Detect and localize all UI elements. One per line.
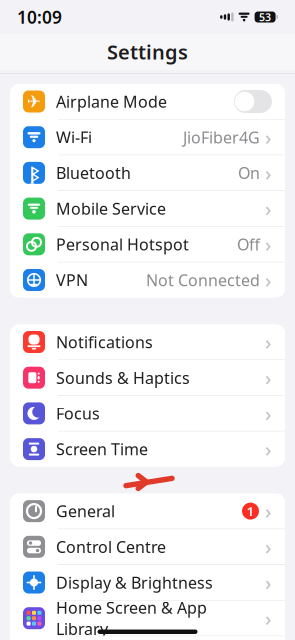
button[interactable]: ◗: [10, 120, 285, 155]
staticText: On: [238, 162, 260, 183]
staticText: Settings: [107, 38, 188, 65]
button[interactable]: Personal Hotspot: [10, 227, 285, 262]
staticText: ›: [265, 231, 272, 258]
button[interactable]: Control Centre: [10, 529, 285, 564]
staticText: ›: [265, 195, 272, 222]
staticText: ✈: [26, 92, 41, 111]
button[interactable]: ᛒ: [10, 155, 285, 190]
button[interactable]: Screen Time: [10, 432, 285, 467]
button[interactable]: Notifications: [10, 324, 285, 359]
staticText: VPN: [56, 269, 88, 291]
button[interactable]: VPN: [10, 262, 285, 297]
staticText: ›: [265, 267, 272, 293]
staticText: Off: [237, 234, 260, 255]
staticText: Home Screen & App Library: [56, 597, 207, 639]
staticText: ›: [265, 533, 272, 560]
button[interactable]: Focus: [10, 396, 285, 431]
staticText: ›: [265, 400, 272, 427]
button[interactable]: Mobile Service: [10, 191, 285, 226]
staticText: 53: [259, 10, 271, 24]
staticText: Not Connected: [146, 269, 260, 291]
staticText: ›: [265, 364, 272, 391]
staticText: 1: [246, 502, 254, 520]
staticText: ᛒ: [29, 161, 38, 185]
staticText: Airplane Mode: [56, 91, 167, 112]
staticText: Bluetooth: [56, 162, 131, 183]
staticText: Display & Brightness: [56, 572, 213, 593]
staticText: Mobile Service: [56, 198, 166, 219]
staticText: ›: [265, 124, 272, 150]
button[interactable]: ✈: [10, 84, 285, 119]
button[interactable]: Display & Brightness: [10, 565, 285, 600]
staticText: ›: [265, 605, 272, 631]
staticText: Screen Time: [56, 438, 148, 460]
staticText: Sounds & Haptics: [56, 367, 190, 388]
staticText: General: [56, 500, 115, 522]
button[interactable]: Sounds & Haptics: [10, 360, 285, 395]
button[interactable]: Home Screen & App Library: [10, 601, 285, 636]
button[interactable]: General: [10, 494, 285, 529]
staticText: Focus: [56, 403, 100, 424]
staticText: ›: [265, 160, 272, 186]
staticText: 10:09: [17, 5, 62, 28]
staticText: ›: [265, 498, 272, 524]
staticText: Control Centre: [56, 536, 166, 557]
staticText: ›: [265, 436, 272, 462]
staticText: ›: [265, 329, 272, 355]
staticText: Notifications: [56, 331, 153, 353]
staticText: Personal Hotspot: [56, 234, 189, 255]
staticText: ›: [265, 569, 272, 596]
staticText: JioFiber4G: [183, 127, 260, 148]
staticText: Wi-Fi: [56, 127, 92, 148]
